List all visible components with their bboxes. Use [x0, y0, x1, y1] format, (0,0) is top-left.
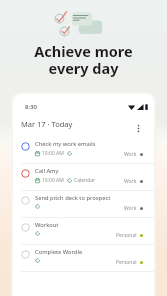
staticText: Personal — [116, 259, 137, 266]
staticText: Work — [124, 205, 137, 212]
staticText: Calendar — [74, 177, 96, 184]
button[interactable]: Complete Wordle — [13, 245, 154, 272]
staticText: Call Amy — [35, 167, 59, 175]
staticText: 8:30 — [25, 103, 37, 111]
staticText: Work — [124, 178, 137, 185]
button[interactable]: Send pitch deck to prospect — [13, 191, 154, 218]
staticText: Personal — [116, 232, 137, 239]
button[interactable]: More options — [132, 122, 145, 135]
staticText: Workout — [35, 221, 59, 229]
staticText: Send pitch deck to prospect — [35, 194, 111, 202]
staticText: Mar 17 · Today — [21, 119, 73, 129]
staticText: Check my work emails — [35, 140, 96, 148]
staticText: 10:00 AM — [42, 177, 64, 184]
staticText: Achieve more every day — [34, 41, 133, 78]
button[interactable]: Call Amy — [13, 164, 154, 191]
staticText: Work — [124, 151, 137, 158]
button[interactable]: Workout — [13, 218, 154, 245]
staticText: 10:00 AM — [42, 150, 64, 157]
button[interactable]: Check my work emails — [13, 137, 154, 164]
staticText: Complete Wordle — [35, 248, 83, 256]
